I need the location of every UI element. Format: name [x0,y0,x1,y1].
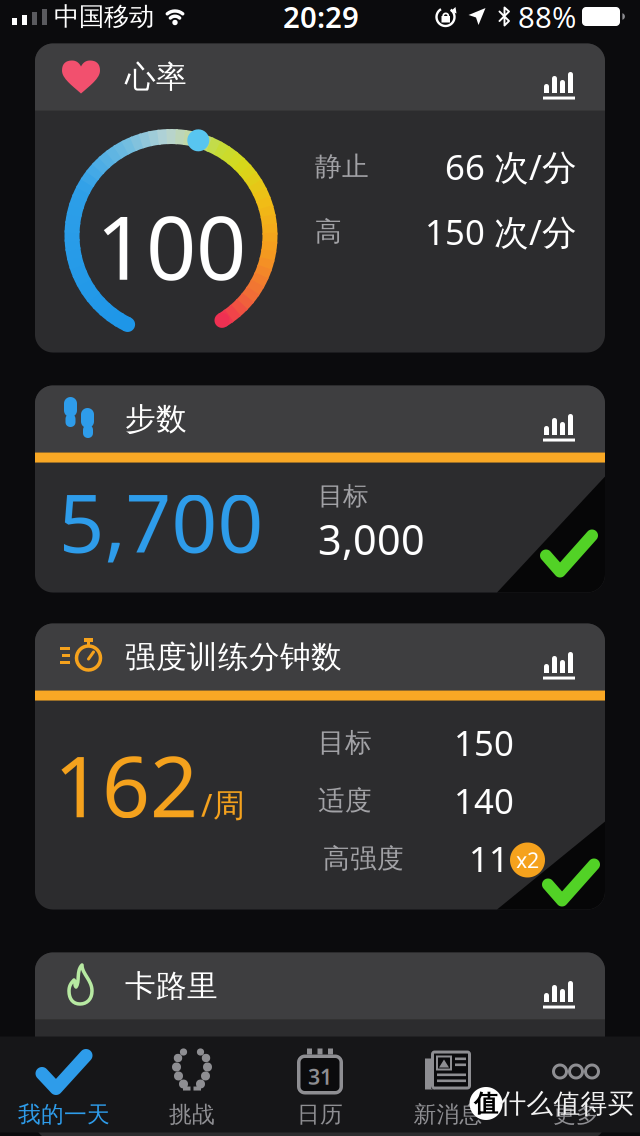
staticText: 更多 [553,1100,599,1128]
button[interactable]: 强度训练分钟数 [35,623,605,909]
staticText: 卡路里 [125,967,218,1005]
staticText: 5,700 [58,468,263,575]
staticText: 高强度 [323,842,404,875]
button[interactable]: 挑战 [128,1042,256,1134]
button[interactable]: 心率 [35,43,605,352]
staticText: 150 [454,719,514,765]
staticText: 162 [54,729,198,840]
button[interactable]: 我的一天 [0,1042,128,1134]
staticText: 适度 [318,784,372,817]
staticText: 高 [315,215,342,248]
staticText: 什么值得买 [499,1087,634,1120]
button[interactable]: 卡路里 [35,952,605,1136]
staticText: 值 [474,1089,498,1118]
staticText: 11 [469,835,509,881]
button[interactable]: 更多 [512,1042,640,1134]
staticText: 150 次/分 [425,208,577,254]
staticText: 挑战 [169,1100,215,1128]
staticText: /周 [201,783,245,825]
staticText: 66 次/分 [445,143,577,189]
staticText: 20:29 [283,0,359,36]
staticText: 心率 [125,58,187,96]
staticText: 88% [518,0,576,36]
staticText: 强度训练分钟数 [125,638,342,676]
staticText: 中国移动 [54,1,154,32]
staticText: 3,000 [318,512,425,566]
staticText: 静止 [315,150,369,183]
staticText: 新消息 [413,1100,482,1128]
staticText: 31 [308,1062,332,1091]
button[interactable]: 31 [256,1042,384,1134]
staticText: 140 [454,777,514,823]
staticText: 日历 [297,1100,343,1128]
staticText: 我的一天 [18,1100,110,1128]
button[interactable]: 新消息 [384,1042,512,1134]
staticText: 步数 [125,400,187,438]
staticText: 目标 [318,480,368,512]
staticText: x2 [516,846,539,874]
button[interactable]: 步数 [35,385,605,592]
staticText: 100 [96,187,246,304]
staticText: 目标 [318,726,372,759]
